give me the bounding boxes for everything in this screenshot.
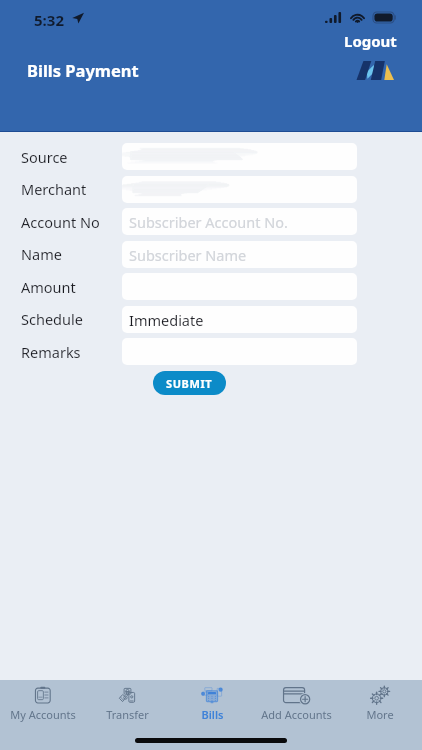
button[interactable]: SUBMIT	[153, 371, 226, 395]
button[interactable]: Subscriber Name	[122, 241, 357, 268]
staticText: Account No	[21, 212, 100, 232]
staticText: Immediate	[129, 310, 204, 330]
button[interactable]: Bills	[170, 686, 254, 722]
staticText: Logout	[344, 31, 397, 51]
button[interactable]: Logout	[338, 28, 403, 54]
staticText: Subscriber Account No.	[129, 212, 288, 232]
button[interactable]: My Accounts	[0, 686, 85, 722]
button[interactable]: More	[338, 686, 422, 722]
staticText: Name	[21, 244, 62, 264]
staticText: 5:32	[34, 10, 64, 30]
staticText: Bills Payment	[27, 59, 139, 81]
staticText: Amount	[21, 277, 76, 297]
staticText: Subscriber Name	[129, 245, 247, 265]
staticText: Bills	[201, 707, 224, 722]
button[interactable]: Subscriber Account No.	[122, 208, 357, 235]
staticText: Merchant	[21, 179, 87, 199]
staticText: Schedule	[21, 309, 83, 329]
button[interactable]: Add Accounts	[254, 686, 338, 722]
staticText: Transfer	[106, 707, 149, 722]
staticText: SUBMIT	[166, 376, 213, 391]
staticText: Add Accounts	[261, 707, 332, 722]
staticText: My Accounts	[10, 707, 76, 722]
staticText: Source	[21, 147, 68, 167]
button[interactable]: Immediate	[122, 306, 357, 333]
button[interactable]	[122, 143, 357, 170]
staticText: More	[366, 707, 394, 722]
staticText: Remarks	[21, 342, 81, 362]
button[interactable]: Transfer	[85, 686, 170, 722]
button[interactable]	[122, 176, 357, 203]
